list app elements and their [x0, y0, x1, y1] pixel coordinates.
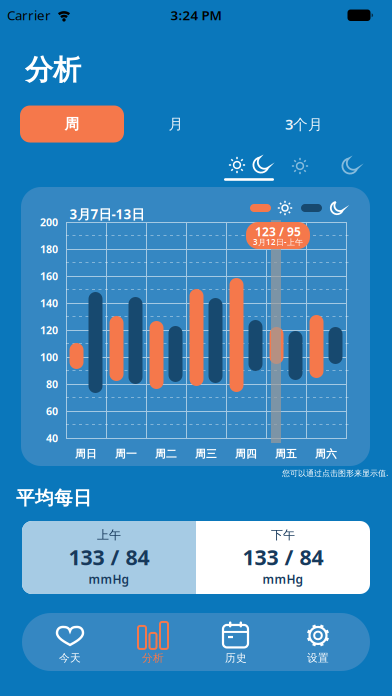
staticText: mmHg: [262, 571, 303, 587]
staticText: 周二: [155, 447, 177, 460]
button[interactable]: 下午: [338, 154, 362, 178]
staticText: 3个月: [285, 114, 323, 134]
button[interactable]: 分析: [117, 617, 189, 669]
staticText: mmHg: [88, 571, 129, 587]
button[interactable]: 上午和下午: [221, 153, 277, 183]
staticText: 历史: [225, 651, 247, 664]
staticText: 3月7日-13日: [69, 205, 144, 223]
staticText: 40: [46, 431, 58, 445]
staticText: 周六: [315, 447, 337, 460]
staticText: 200: [40, 215, 58, 229]
button[interactable]: 周: [20, 105, 124, 142]
button[interactable]: 历史: [200, 617, 272, 669]
staticText: 周三: [195, 447, 217, 460]
button[interactable]: 设置: [282, 617, 354, 669]
staticText: 周: [64, 115, 79, 133]
staticText: 月: [168, 115, 183, 133]
staticText: 周一: [115, 447, 137, 460]
staticText: 您可以通过点击图形来显示值.: [282, 468, 388, 478]
staticText: 设置: [307, 651, 329, 664]
staticText: 160: [40, 269, 58, 283]
button[interactable]: 月: [124, 105, 228, 142]
staticText: 80: [46, 377, 58, 391]
staticText: 100: [40, 350, 58, 364]
button[interactable]: 上午: [288, 154, 312, 178]
staticText: 周四: [235, 447, 257, 460]
staticText: 分析: [142, 651, 164, 664]
staticText: 下午: [271, 528, 295, 542]
button[interactable]: 今天: [34, 617, 106, 669]
staticText: 140: [40, 296, 58, 310]
staticText: 周日: [75, 447, 97, 460]
staticText: 120: [40, 323, 58, 337]
staticText: 123 / 95: [255, 223, 301, 239]
staticText: 分析: [25, 53, 81, 87]
staticText: 3:24 PM: [170, 6, 221, 24]
staticText: 周五: [275, 447, 297, 460]
staticText: 今天: [59, 651, 81, 664]
staticText: 平均每日: [16, 486, 92, 509]
staticText: 60: [46, 404, 58, 418]
staticText: 133 / 84: [68, 543, 149, 571]
staticText: 180: [40, 242, 58, 256]
staticText: Carrier: [7, 6, 51, 24]
button[interactable]: 3个月: [239, 105, 369, 142]
staticText: 3月12日-上午: [253, 237, 303, 247]
staticText: 133 / 84: [242, 543, 323, 571]
staticText: 上午: [97, 528, 121, 542]
